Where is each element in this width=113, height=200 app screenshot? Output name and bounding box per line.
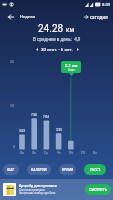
staticText: экстренная помощь при боли <box>19 192 56 195</box>
staticText: Пн <box>14 151 30 155</box>
staticText: РАССТ. <box>90 168 101 172</box>
staticText: ШАГ <box>7 168 15 172</box>
staticText: 7.04 <box>38 115 54 119</box>
staticText: 3.95 <box>51 128 67 132</box>
staticText: 0 <box>13 145 15 149</box>
staticText: Артрейд для суставов <box>19 184 57 188</box>
staticText: В среднем в день: 4,9 <box>33 37 81 42</box>
button[interactable]: СЕГОДНЯ <box>81 12 111 22</box>
button[interactable]: ШАГ <box>3 164 19 175</box>
staticText: СМОТРЕТЬ <box>89 188 107 192</box>
button[interactable]: Артрейд для суставов <box>0 179 113 200</box>
button[interactable]: РАССТ. <box>84 164 106 175</box>
staticText: Доказано проверено <box>19 189 45 192</box>
staticText: 2.1 км <box>65 63 78 68</box>
button[interactable]: КАЛОРИЯ <box>27 164 51 175</box>
staticText: Чт <box>51 151 67 155</box>
staticText: 10 <box>10 104 14 108</box>
staticText: Ср <box>38 151 54 155</box>
staticText: Вс <box>87 151 103 155</box>
staticText: 30 сент. - 6 окт. <box>41 47 73 52</box>
button[interactable]: Previous week <box>33 46 40 53</box>
button[interactable]: 2.1 км <box>61 61 81 73</box>
staticText: 24.28 <box>38 23 64 35</box>
button[interactable]: ВРЕМЯ <box>59 164 76 175</box>
staticText: км <box>66 26 75 34</box>
staticText: 3.63 <box>14 129 30 133</box>
staticText: Вт <box>26 151 42 155</box>
staticText: 4 окт. <box>68 68 76 71</box>
staticText: Пт <box>63 151 79 155</box>
button[interactable]: СМОТРЕТЬ <box>85 184 111 195</box>
staticText: ВРЕМЯ <box>62 168 74 172</box>
button[interactable]: Next week <box>74 46 81 53</box>
staticText: 7.56 <box>26 113 42 117</box>
staticText: Неделя <box>20 14 35 19</box>
button[interactable]: Back <box>3 9 18 24</box>
staticText: Сб <box>75 151 91 155</box>
staticText: СЕГОДНЯ <box>90 15 108 19</box>
staticText: КАЛОРИЯ <box>31 168 47 172</box>
staticText: 20 <box>10 60 14 64</box>
staticText: 8:39 <box>102 2 111 7</box>
